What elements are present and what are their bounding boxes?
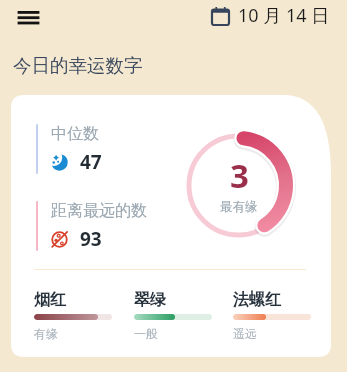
staticText: 有缘 (34, 326, 58, 341)
staticText: 今日的幸运数字 (13, 54, 143, 77)
staticText: 3 (230, 153, 249, 198)
button[interactable]: 中位数 (36, 124, 102, 175)
staticText: 一般 (134, 326, 158, 341)
staticText: 法螺红 (233, 290, 281, 310)
staticText: 10 月 14 日 (238, 3, 330, 28)
staticText: 烟红 (34, 290, 66, 310)
button[interactable]: 距离最远的数 (36, 201, 147, 252)
button[interactable]: 翠绿 (134, 290, 212, 341)
staticText: 遥远 (233, 326, 257, 341)
button[interactable]: 烟红 (34, 290, 112, 341)
button[interactable]: Menu (13, 4, 43, 30)
staticText: 距离最远的数 (51, 201, 147, 221)
staticText: 47 (80, 149, 102, 175)
staticText: 中位数 (51, 124, 99, 144)
button[interactable]: 法螺红 (233, 290, 311, 341)
staticText: 93 (80, 226, 102, 252)
button[interactable]: 10 月 14 日 (212, 3, 330, 28)
staticText: 最有缘 (220, 199, 258, 215)
staticText: 翠绿 (134, 290, 166, 310)
